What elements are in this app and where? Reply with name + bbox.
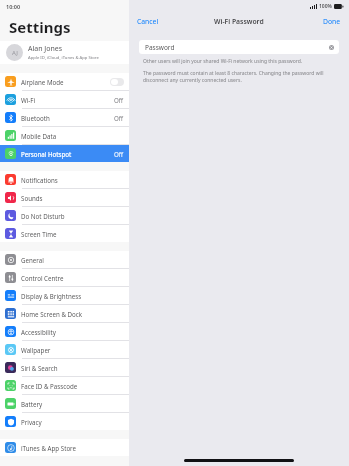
staticText: Cancel	[137, 17, 159, 26]
staticText: Notifications	[21, 176, 58, 184]
staticText: Sounds	[21, 194, 43, 202]
button[interactable]: Clear text	[329, 45, 334, 50]
staticText: Bluetooth	[21, 114, 50, 122]
staticText: Display & Brightness	[21, 292, 82, 300]
staticText: Screen Time	[21, 230, 57, 238]
staticText: The password must contain at least 8 cha…	[143, 70, 335, 84]
staticText: 100%	[319, 3, 332, 10]
staticText: Control Centre	[21, 274, 64, 282]
staticText: iTunes & App Store	[21, 444, 77, 452]
button[interactable]: Airplane Mode	[0, 73, 129, 90]
staticText: Home Screen & Dock	[21, 310, 83, 318]
button[interactable]: Bluetooth	[0, 109, 129, 126]
button[interactable]: Do Not Disturb	[0, 207, 129, 224]
button[interactable]: Password	[139, 40, 339, 54]
staticText: Personal Hotspot	[21, 150, 72, 158]
staticText: Mobile Data	[21, 132, 57, 140]
button[interactable]: Home Screen & Dock	[0, 305, 129, 322]
staticText: Off	[114, 150, 124, 158]
button[interactable]: General	[0, 251, 129, 268]
staticText: Wi-Fi	[21, 96, 36, 104]
staticText: Password	[145, 43, 175, 52]
button[interactable]: Siri & Search	[0, 359, 129, 376]
button[interactable]: Sounds	[0, 189, 129, 206]
staticText: General	[21, 256, 44, 264]
button[interactable]	[110, 78, 124, 86]
button[interactable]: Wi-Fi	[0, 91, 129, 108]
button[interactable]: Wallpaper	[0, 341, 129, 358]
staticText: Face ID & Passcode	[21, 382, 78, 390]
staticText: Wi-Fi Password	[214, 17, 264, 26]
staticText: Airplane Mode	[21, 78, 64, 86]
staticText: Alan Jones	[28, 44, 63, 54]
button[interactable]: Screen Time	[0, 225, 129, 242]
staticText: Apple ID, iCloud, iTunes & App Store	[28, 55, 99, 61]
button[interactable]: Display & Brightness	[0, 287, 129, 304]
staticText: AJ	[12, 49, 18, 57]
staticText: 10:00	[6, 3, 21, 10]
button[interactable]: Personal Hotspot	[0, 145, 129, 162]
button[interactable]: Battery	[0, 395, 129, 412]
staticText: Wallpaper	[21, 346, 51, 354]
button[interactable]: Cancel	[129, 14, 167, 29]
staticText: Siri & Search	[21, 364, 58, 372]
button[interactable]: AJ	[0, 41, 129, 64]
staticText: Privacy	[21, 418, 42, 426]
button[interactable]: Accessibility	[0, 323, 129, 340]
button[interactable]: Face ID & Passcode	[0, 377, 129, 394]
staticText: Off	[114, 96, 124, 104]
staticText: Done	[323, 17, 341, 26]
staticText: Other users will join your shared Wi-Fi …	[143, 58, 303, 65]
button[interactable]: Privacy	[0, 413, 129, 430]
button[interactable]: Done	[315, 14, 349, 29]
staticText: Battery	[21, 400, 43, 408]
staticText: Settings	[9, 17, 71, 37]
staticText: Off	[114, 114, 124, 122]
button[interactable]: Notifications	[0, 171, 129, 188]
staticText: Accessibility	[21, 328, 56, 336]
button[interactable]: Control Centre	[0, 269, 129, 286]
button[interactable]: Mobile Data	[0, 127, 129, 144]
button[interactable]: iTunes & App Store	[0, 439, 129, 456]
staticText: Do Not Disturb	[21, 212, 65, 220]
